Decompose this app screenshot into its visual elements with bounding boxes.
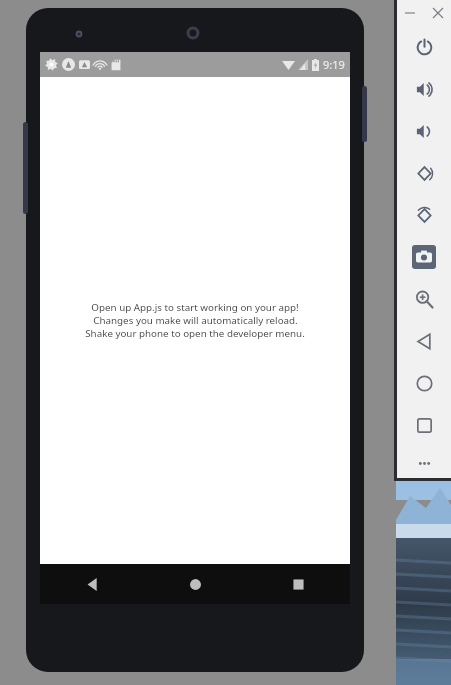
button[interactable]: Home [401,362,447,404]
button[interactable]: Close [428,3,448,23]
button[interactable]: Power [401,26,447,68]
button[interactable]: Back [40,564,144,604]
button[interactable]: Minimize [400,3,420,23]
button[interactable]: Volume down [401,110,447,152]
button[interactable]: Recent apps [247,564,350,604]
staticText: Changes you make will automatically relo… [93,314,298,327]
button[interactable]: Zoom [401,278,447,320]
button[interactable]: More [401,446,447,481]
button[interactable]: Back [401,320,447,362]
staticText: 9:19 [323,57,345,72]
button[interactable]: Volume up [401,68,447,110]
button[interactable]: Rotate left [401,152,447,194]
staticText: Open up App.js to start working on your … [91,301,299,314]
staticText: Shake your phone to open the developer m… [85,327,305,340]
button[interactable]: Rotate right [401,194,447,236]
button[interactable]: Home [144,564,247,604]
button[interactable]: Take screenshot [404,236,444,278]
button[interactable]: Recent apps [401,404,447,446]
